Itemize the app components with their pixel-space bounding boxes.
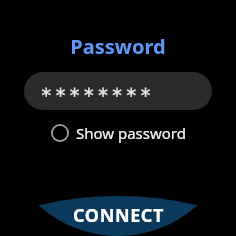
button[interactable]: CONNECT xyxy=(0,186,236,236)
staticText: ∗∗∗∗∗∗∗∗ xyxy=(40,83,154,100)
button[interactable]: Show password xyxy=(47,120,190,146)
staticText: Password xyxy=(70,33,166,60)
button[interactable]: Password input xyxy=(24,72,212,110)
staticText: Show password xyxy=(76,123,186,143)
staticText: CONNECT xyxy=(73,203,164,228)
